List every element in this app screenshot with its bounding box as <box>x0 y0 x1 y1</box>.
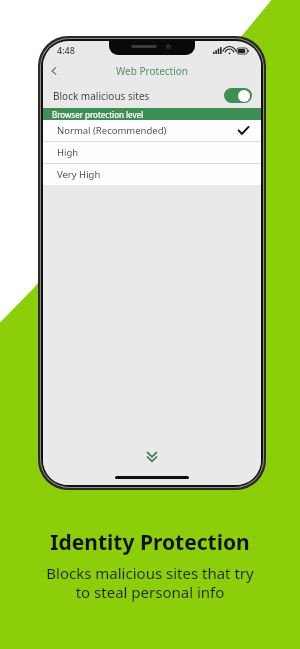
button[interactable]: High <box>43 142 261 163</box>
button[interactable]: Very High <box>43 164 261 185</box>
button[interactable]: Scroll down <box>145 451 159 463</box>
staticText: Very High <box>57 168 101 181</box>
staticText: Blocks malicious sites that try to steal… <box>46 563 254 602</box>
staticText: Identity Protection <box>50 528 250 557</box>
button[interactable]: Block malicious sites <box>43 83 261 108</box>
staticText: Normal (Recommended) <box>57 124 167 137</box>
staticText: Web Protection <box>116 64 188 78</box>
staticText: 4:48 <box>57 44 75 56</box>
staticText: Browser protection level <box>52 109 144 120</box>
button[interactable]: Back <box>43 60 65 82</box>
staticText: High <box>57 146 79 159</box>
button[interactable]: Normal (Recommended) <box>43 120 261 141</box>
staticText: Block malicious sites <box>53 89 150 103</box>
